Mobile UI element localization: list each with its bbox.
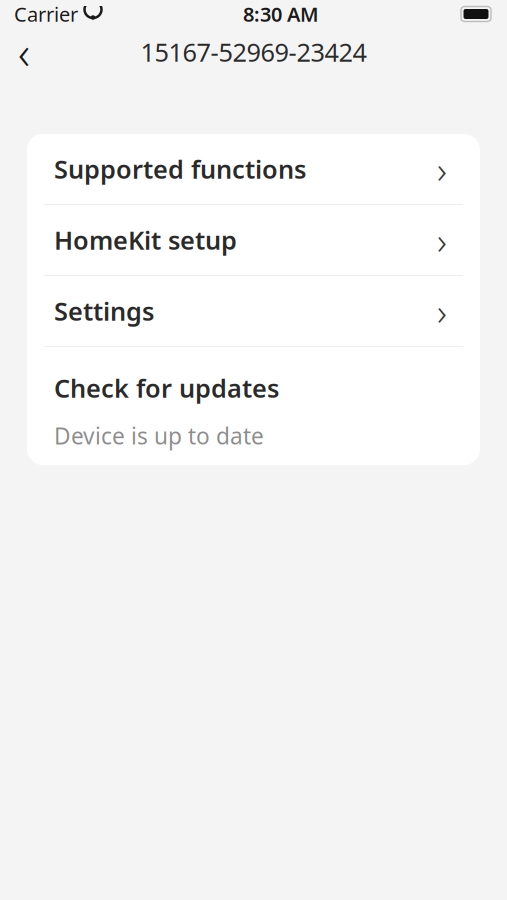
staticText: ‹ — [18, 22, 30, 82]
staticText: Supported functions — [54, 152, 306, 186]
button[interactable]: Back — [0, 30, 48, 74]
staticText: Check for updates — [54, 371, 279, 405]
button[interactable]: Check for updates — [27, 347, 480, 465]
staticText: 15167-52969-23424 — [140, 35, 366, 69]
staticText: Device is up to date — [54, 421, 264, 451]
staticText: Settings — [54, 294, 154, 328]
staticText: Carrier — [14, 1, 78, 27]
staticText: › — [437, 215, 447, 265]
button[interactable]: HomeKit setup — [27, 205, 480, 275]
staticText — [78, 1, 83, 27]
button[interactable]: Supported functions — [27, 134, 480, 204]
staticText: 8:30 AM — [243, 1, 319, 27]
staticText: › — [437, 144, 447, 194]
staticText: HomeKit setup — [54, 223, 237, 257]
staticText: › — [437, 286, 447, 336]
button[interactable]: Settings — [27, 276, 480, 346]
